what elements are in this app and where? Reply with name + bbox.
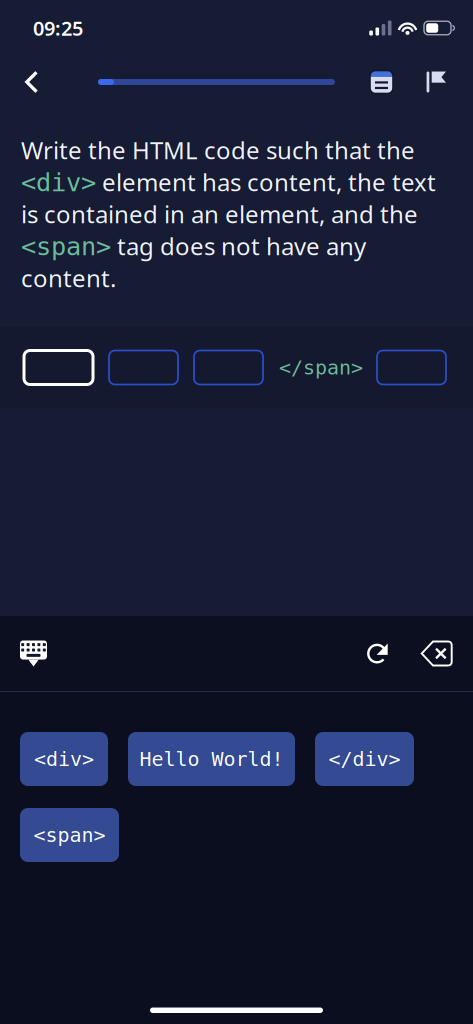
button[interactable]: Back — [0, 59, 38, 105]
button[interactable]: Notes — [370, 59, 412, 105]
button[interactable]: Reset — [351, 616, 388, 691]
staticText: <span> — [21, 232, 111, 261]
button[interactable]: Answer slot — [109, 350, 178, 384]
button[interactable]: Hide keyboard — [0, 616, 47, 691]
button[interactable]: </div> — [315, 732, 414, 786]
staticText: 09:25 — [33, 15, 83, 41]
staticText: </div> — [328, 748, 400, 770]
staticText: <div> — [21, 168, 96, 197]
staticText: element has content, the text — [96, 166, 436, 198]
button[interactable]: Delete — [401, 616, 453, 691]
staticText: Hello World! — [139, 748, 283, 770]
staticText: <div> — [34, 748, 94, 770]
button[interactable]: Answer slot — [24, 350, 93, 384]
button[interactable]: Hello World! — [128, 732, 295, 786]
button[interactable]: <span> — [20, 808, 119, 862]
staticText: tag does not have any — [111, 230, 366, 262]
button[interactable]: <div> — [20, 732, 108, 786]
staticText: is contained in an element, and the — [21, 198, 418, 230]
staticText: <span> — [33, 824, 105, 846]
button[interactable]: Answer slot — [377, 350, 446, 384]
button[interactable]: Answer slot — [194, 350, 263, 384]
staticText: content. — [21, 262, 116, 294]
staticText: </span> — [279, 356, 363, 379]
staticText: Write the HTML code such that the — [21, 134, 415, 166]
button[interactable]: Report — [412, 59, 446, 105]
